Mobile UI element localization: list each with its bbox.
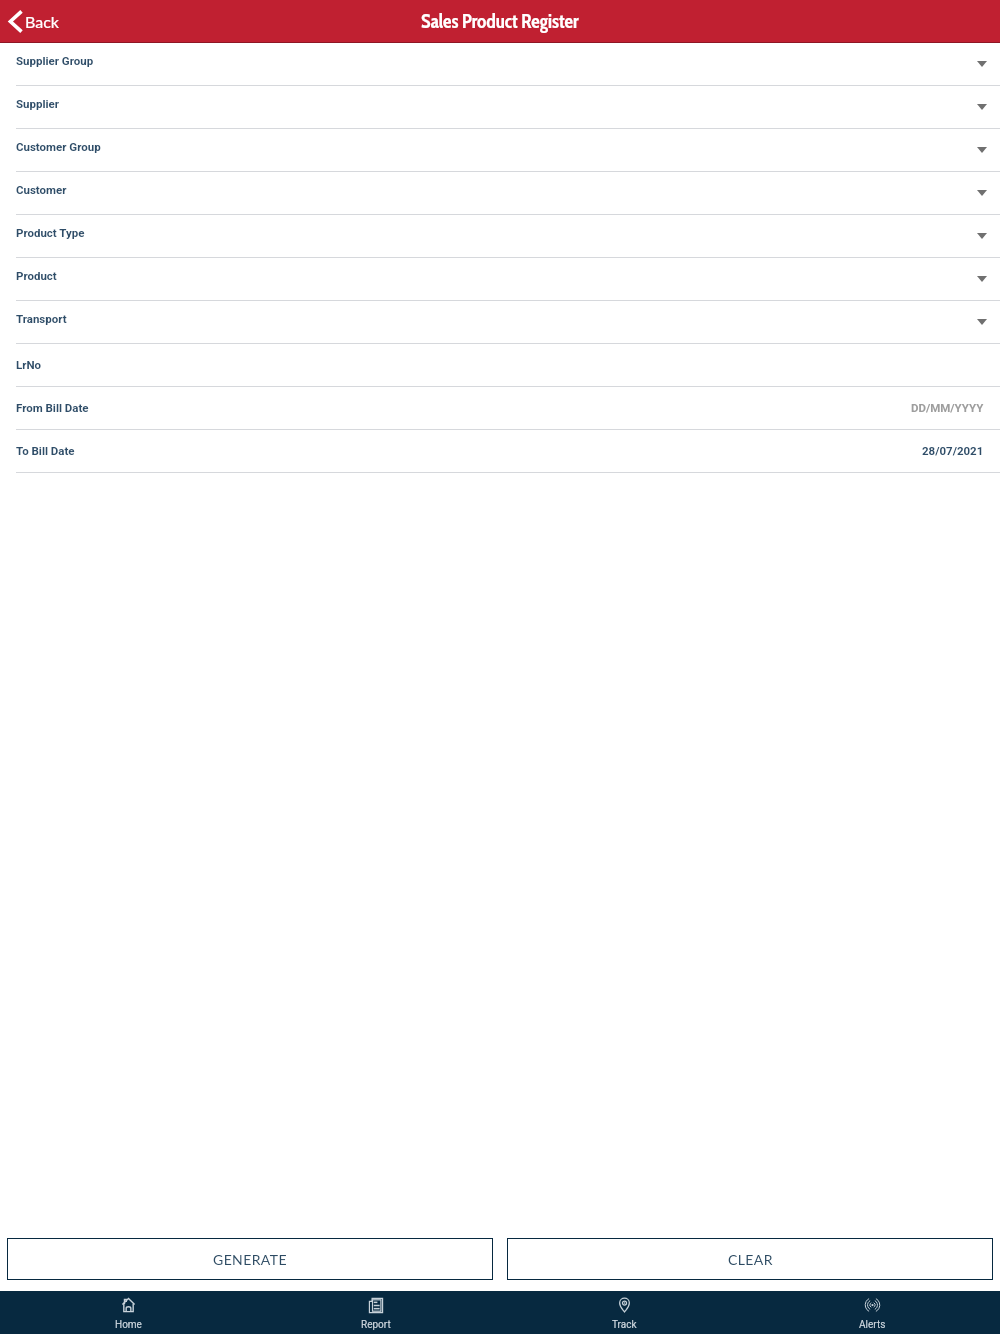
button[interactable]: Product xyxy=(0,258,1000,301)
button[interactable]: Customer Group xyxy=(0,129,1000,172)
button[interactable]: Transport xyxy=(0,301,1000,344)
staticText: Product Type xyxy=(16,226,85,239)
staticText: From Bill Date xyxy=(16,401,89,414)
button[interactable]: Home xyxy=(4,1291,252,1334)
staticText: Transport xyxy=(16,312,67,325)
staticText: Supplier Group xyxy=(16,54,94,67)
staticText: GENERATE xyxy=(213,1251,287,1268)
button[interactable]: To Bill Date xyxy=(0,430,1000,473)
staticText: To Bill Date xyxy=(16,444,75,457)
staticText: Supplier xyxy=(16,97,59,110)
staticText: Customer Group xyxy=(16,140,101,153)
staticText: Customer xyxy=(16,183,67,196)
button[interactable]: Track xyxy=(500,1291,748,1334)
button[interactable]: From Bill Date xyxy=(0,387,1000,430)
button[interactable]: Customer xyxy=(0,172,1000,215)
button[interactable]: Report xyxy=(252,1291,500,1334)
button[interactable]: GENERATE xyxy=(7,1238,493,1280)
staticText: Product xyxy=(16,269,57,282)
staticText: CLEAR xyxy=(728,1251,773,1268)
button[interactable]: Product Type xyxy=(0,215,1000,258)
button[interactable]: LrNo xyxy=(0,344,1000,387)
staticText: Back xyxy=(25,12,59,31)
staticText: Alerts xyxy=(859,1319,886,1331)
button[interactable]: Alerts xyxy=(748,1291,996,1334)
staticText: Home xyxy=(115,1319,142,1331)
button[interactable]: Back xyxy=(4,6,63,37)
staticText: Sales Product Register xyxy=(421,10,579,33)
button[interactable]: CLEAR xyxy=(507,1238,993,1280)
staticText: LrNo xyxy=(16,358,42,371)
staticText: Report xyxy=(361,1319,391,1331)
staticText: 28/07/2021 xyxy=(922,444,984,457)
button[interactable]: Supplier Group xyxy=(0,43,1000,86)
staticText: DD/MM/YYYY xyxy=(911,401,984,414)
button[interactable]: Supplier xyxy=(0,86,1000,129)
staticText: Track xyxy=(612,1319,637,1331)
